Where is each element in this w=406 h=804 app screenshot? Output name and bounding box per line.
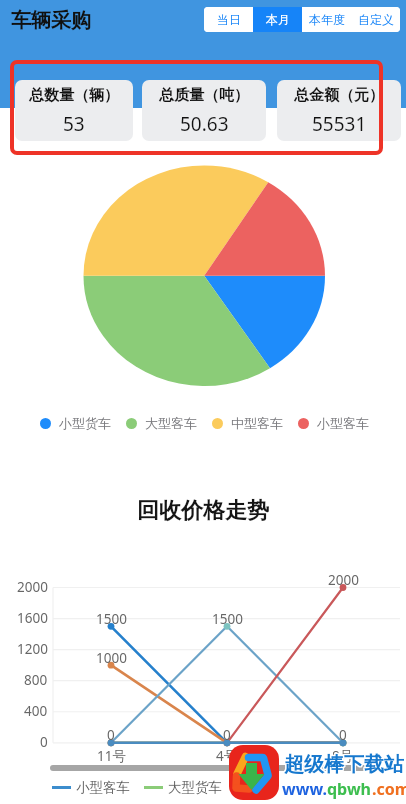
staticText: 2000 [328, 571, 359, 589]
staticText: 总金额（元） [294, 86, 384, 105]
button[interactable]: 大型货车 [144, 779, 222, 796]
staticText: 中型客车 [231, 415, 283, 431]
button[interactable]: 总金额（元） [277, 80, 401, 141]
staticText: 当日 [217, 12, 241, 27]
staticText: 本年度 [309, 12, 345, 27]
button[interactable]: 自定义 [351, 7, 400, 32]
staticText: 超级棒下载站 [284, 751, 404, 776]
staticText: 0 [107, 726, 115, 744]
staticText: 超级棒下载站 [283, 752, 403, 777]
staticText: 11号 [97, 747, 126, 765]
button[interactable]: 总质量（吨） [142, 80, 266, 141]
staticText: 1500 [96, 610, 127, 628]
staticText: 0 [223, 726, 231, 744]
staticText: 1500 [212, 610, 243, 628]
button[interactable]: 大型客车 [126, 415, 197, 431]
staticText: 总数量（辆） [29, 86, 119, 105]
staticText: 400 [24, 702, 48, 720]
staticText: www.qbwh.com [281, 779, 406, 801]
staticText: 53 [63, 111, 85, 137]
staticText: 小型客车 [317, 415, 369, 431]
staticText: 小型货车 [59, 415, 111, 431]
staticText: 超级棒下载站 [285, 753, 405, 778]
staticText: 小型客车 [76, 779, 130, 796]
staticText: 车辆采购 [11, 8, 91, 33]
button[interactable]: 小型客车 [298, 415, 369, 431]
staticText: www. [282, 778, 327, 800]
staticText: 大型客车 [145, 415, 197, 431]
staticText: www.qbwh.com [281, 777, 406, 799]
staticText: 本月 [266, 12, 290, 27]
staticText: 2000 [17, 578, 48, 596]
staticText: 8号 [332, 747, 354, 765]
button[interactable]: 中型客车 [212, 415, 283, 431]
staticText: .com [372, 778, 406, 800]
button[interactable]: 本月 [253, 7, 302, 32]
button[interactable]: 当日 [204, 7, 253, 32]
staticText: 超级棒下载站 [284, 753, 404, 778]
staticText: 回收价格走势 [137, 497, 269, 525]
staticText: 800 [24, 671, 48, 689]
button[interactable] [50, 765, 380, 771]
staticText: www.qbwh.com [281, 778, 406, 800]
staticText: 超级棒下载站 [284, 752, 404, 777]
staticText: 超级棒下载站 [283, 751, 403, 776]
staticText: 4号 [216, 747, 238, 765]
staticText: 大型货车 [168, 779, 222, 796]
staticText: 1600 [17, 609, 48, 627]
button[interactable]: 总数量（辆） [15, 80, 133, 141]
staticText: www.qbwh.com [283, 777, 406, 799]
staticText: 总质量（吨） [159, 86, 249, 105]
staticText: www.qbwh.com [283, 779, 406, 801]
button[interactable]: 小型货车 [40, 415, 111, 431]
staticText: 自定义 [358, 12, 394, 27]
staticText: 超级棒下载站 [285, 751, 405, 776]
staticText: 超级棒下载站 [283, 753, 403, 778]
button[interactable]: 小型客车 [52, 779, 130, 796]
button[interactable]: 本年度 [302, 7, 351, 32]
staticText: qbwh [327, 778, 372, 800]
staticText: 0 [339, 726, 347, 744]
staticText: www.qbwh.com [282, 777, 406, 799]
staticText: 0 [40, 733, 48, 751]
staticText: 1200 [17, 640, 48, 658]
staticText: 1000 [96, 649, 127, 667]
staticText: www.qbwh.com [283, 778, 406, 800]
staticText: 超级棒下载站 [285, 752, 405, 777]
staticText: www.qbwh.com [282, 779, 406, 801]
staticText: 55531 [312, 111, 367, 137]
staticText: 50.63 [180, 111, 229, 137]
